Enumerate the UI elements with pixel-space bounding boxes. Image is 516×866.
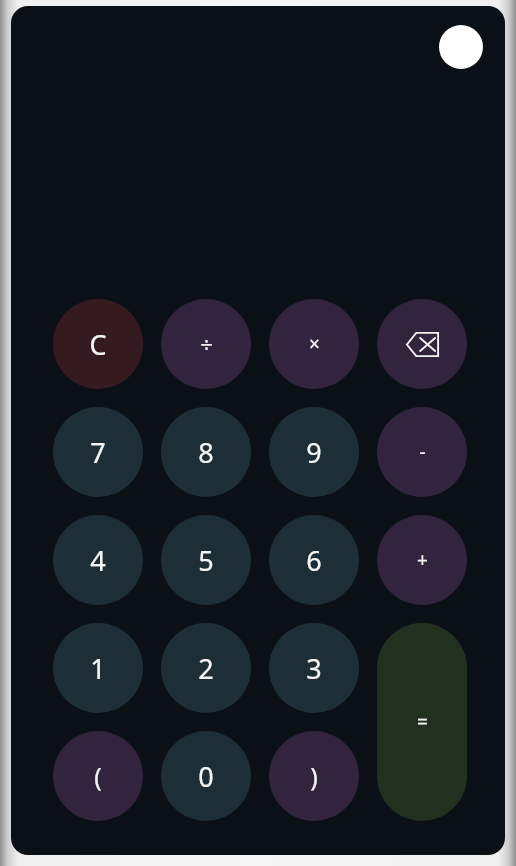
staticText: 9: [306, 434, 322, 471]
button[interactable]: ÷: [161, 299, 251, 389]
staticText: 2: [198, 650, 214, 687]
button[interactable]: +: [377, 515, 467, 605]
button[interactable]: 6: [269, 515, 359, 605]
staticText: 7: [90, 434, 106, 471]
button[interactable]: Backspace: [377, 299, 467, 389]
staticText: 5: [198, 542, 214, 579]
button[interactable]: ×: [269, 299, 359, 389]
staticText: (: [94, 759, 102, 793]
button[interactable]: 4: [53, 515, 143, 605]
button[interactable]: 5: [161, 515, 251, 605]
staticText: ÷: [200, 329, 213, 359]
staticText: C: [89, 326, 107, 363]
button[interactable]: 1: [53, 623, 143, 713]
staticText: =: [417, 709, 428, 735]
staticText: 6: [306, 542, 322, 579]
button[interactable]: 7: [53, 407, 143, 497]
staticText: 8: [198, 434, 214, 471]
button[interactable]: ): [269, 731, 359, 821]
button[interactable]: Toggle theme: [439, 25, 483, 69]
button[interactable]: =: [377, 623, 467, 821]
button[interactable]: 9: [269, 407, 359, 497]
button[interactable]: 0: [161, 731, 251, 821]
staticText: ): [310, 759, 318, 793]
staticText: 0: [198, 758, 214, 795]
staticText: +: [417, 547, 428, 573]
button[interactable]: 3: [269, 623, 359, 713]
staticText: -: [419, 439, 426, 465]
staticText: 4: [90, 542, 106, 579]
button[interactable]: 2: [161, 623, 251, 713]
staticText: 3: [306, 650, 322, 687]
staticText: ×: [309, 331, 320, 357]
button[interactable]: -: [377, 407, 467, 497]
button[interactable]: 8: [161, 407, 251, 497]
button[interactable]: (: [53, 731, 143, 821]
staticText: 1: [90, 650, 106, 687]
button[interactable]: C: [53, 299, 143, 389]
